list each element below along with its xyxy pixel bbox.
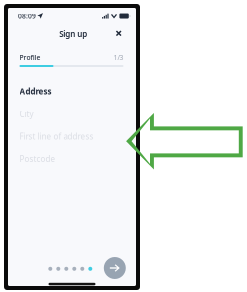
staticText: 1/3 [113, 53, 123, 62]
staticText: Sign up [59, 29, 87, 39]
staticText: City [19, 108, 33, 119]
staticText: Postcode [19, 153, 55, 164]
staticText: 08:09 [18, 12, 36, 20]
staticText: Address [19, 86, 51, 97]
staticText: First line of address [19, 131, 93, 142]
staticText: Profile [19, 53, 40, 62]
button[interactable]: Close [111, 26, 126, 41]
button[interactable]: Next [104, 257, 126, 279]
